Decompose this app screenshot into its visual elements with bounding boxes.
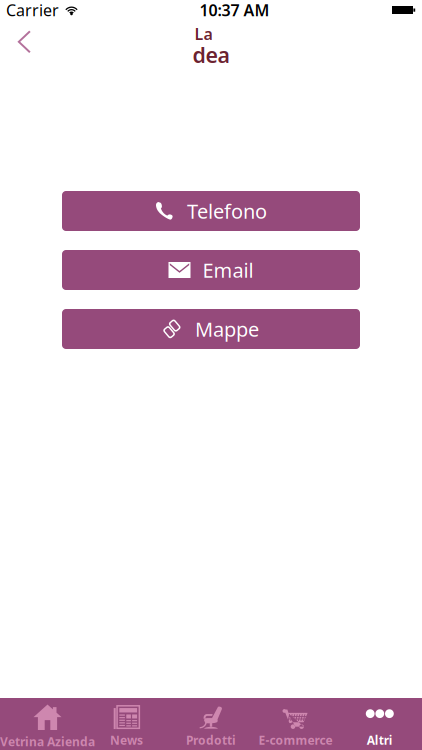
button[interactable]: Back [0, 20, 46, 64]
button[interactable]: News [84, 698, 169, 750]
staticText: Vetrina Azienda [0, 733, 95, 749]
button[interactable]: Email [62, 250, 360, 290]
button[interactable]: Vetrina Azienda [0, 698, 84, 750]
button[interactable]: E-commerce [253, 698, 338, 750]
staticText: E-commerce [258, 732, 332, 748]
button[interactable]: Telefono [62, 191, 360, 231]
button[interactable]: Altri [338, 698, 422, 750]
staticText: Email [202, 257, 253, 283]
button[interactable]: Prodotti [169, 698, 253, 750]
staticText: Carrier [6, 0, 59, 21]
staticText: Altri [367, 732, 393, 748]
staticText: La [194, 23, 212, 44]
staticText: Prodotti [186, 732, 236, 748]
staticText: dea [192, 40, 229, 69]
staticText: Mappe [195, 316, 259, 342]
button[interactable]: Mappe [62, 309, 360, 349]
staticText: 10:37 AM [199, 0, 269, 21]
staticText: Telefono [187, 198, 267, 224]
staticText: News [110, 732, 143, 748]
